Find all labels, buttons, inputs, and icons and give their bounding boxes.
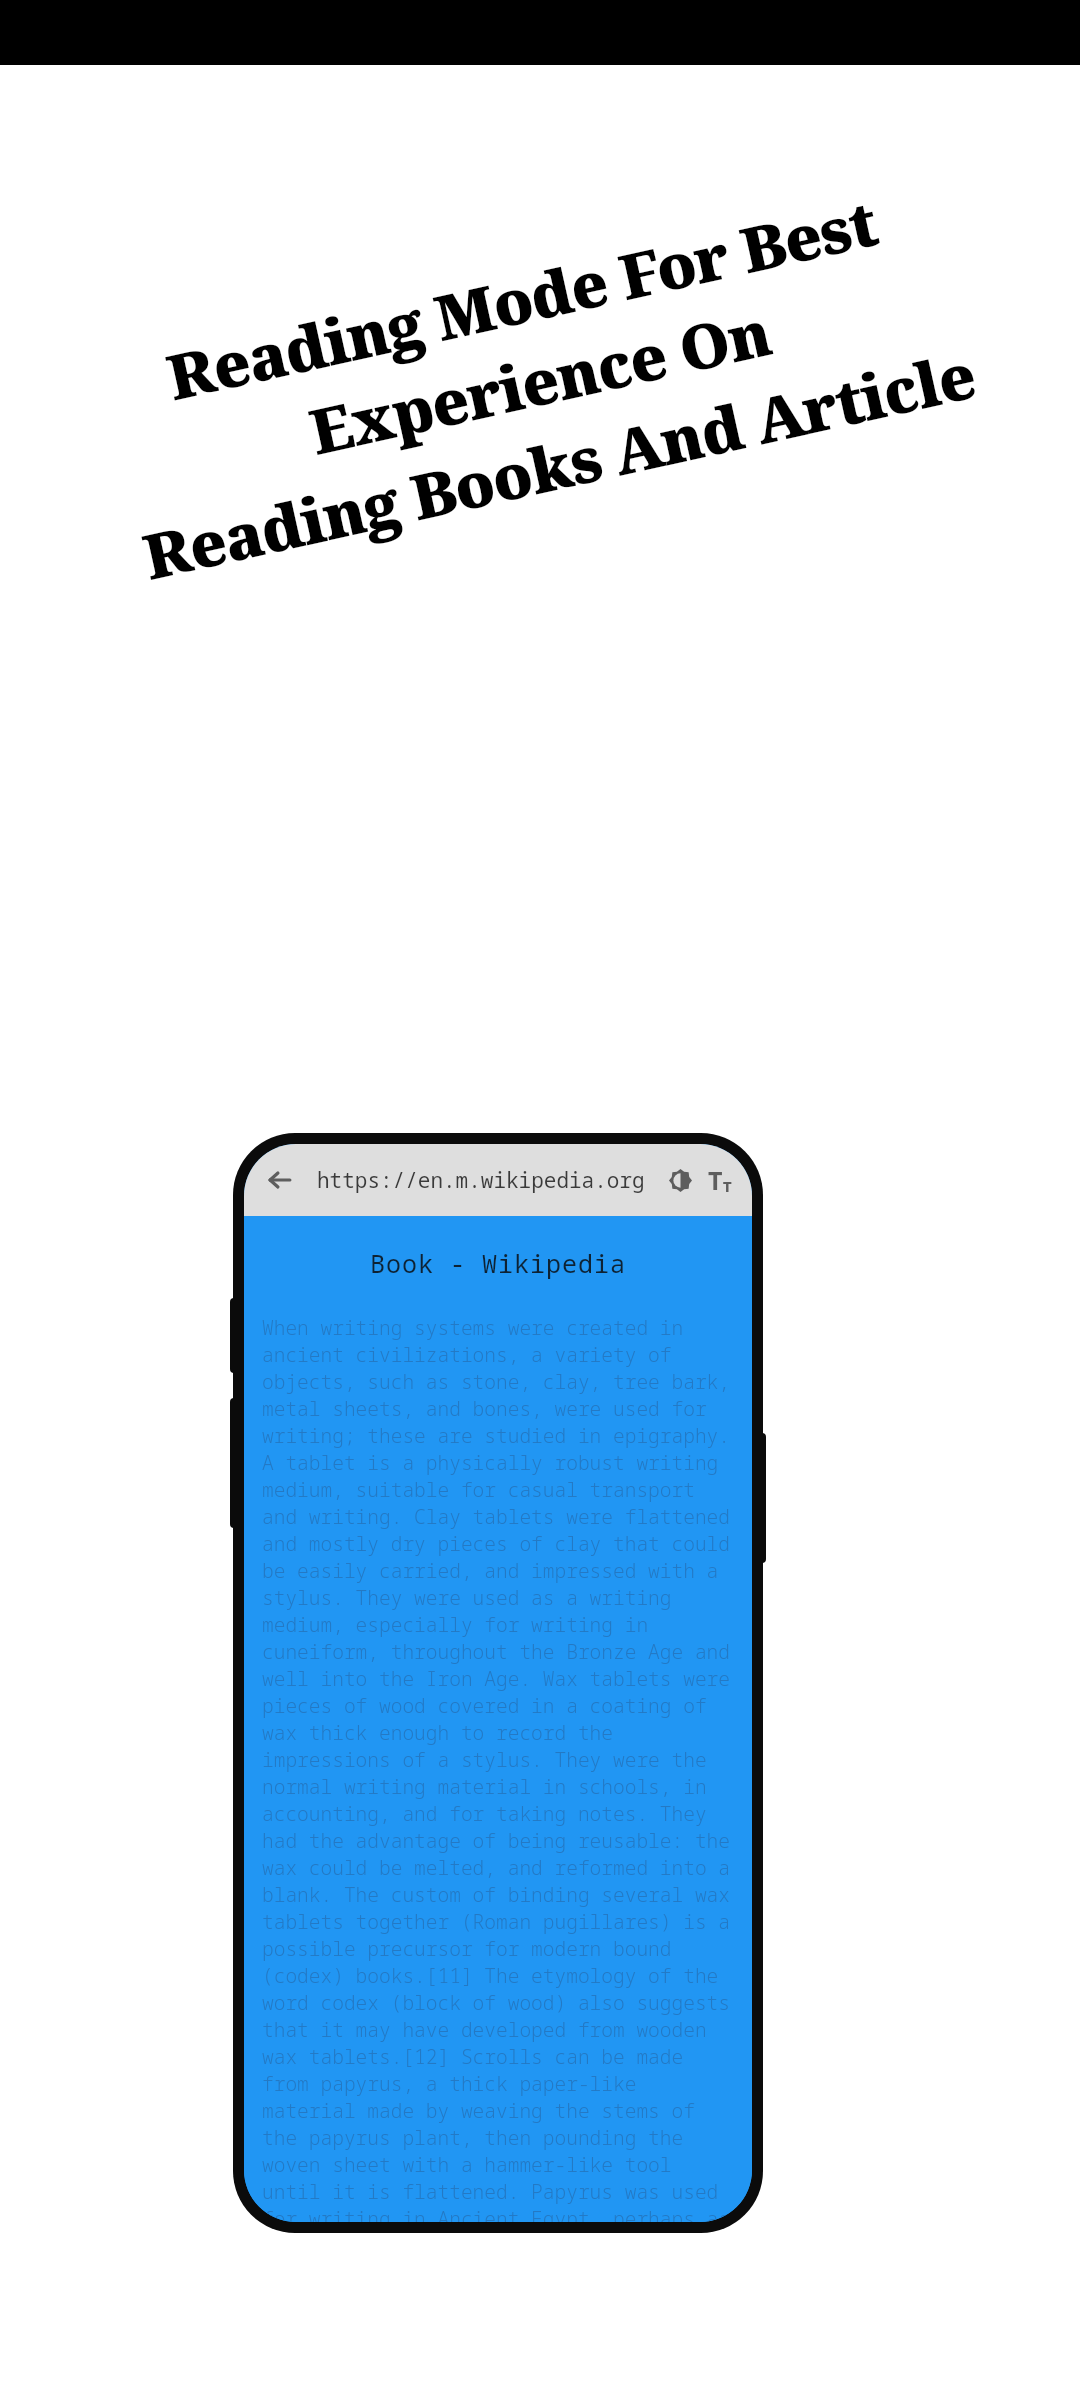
button[interactable]: Back (258, 1158, 302, 1202)
staticText: Reading Books And Article (135, 332, 982, 598)
staticText: T (708, 1163, 723, 1197)
button[interactable]: https://en.m.wikipedia.org (302, 1166, 660, 1195)
button[interactable]: Brightness (660, 1160, 700, 1200)
staticText: Book - Wikipedia (370, 1246, 627, 1280)
staticText: т (723, 1174, 732, 1197)
staticText: When writing systems were created in anc… (262, 1314, 734, 2222)
staticText: https://en.m.wikipedia.org (317, 1166, 645, 1195)
staticText: Reading Mode For Best Experience On (0, 141, 1076, 539)
button[interactable]: Text size (700, 1160, 740, 1200)
